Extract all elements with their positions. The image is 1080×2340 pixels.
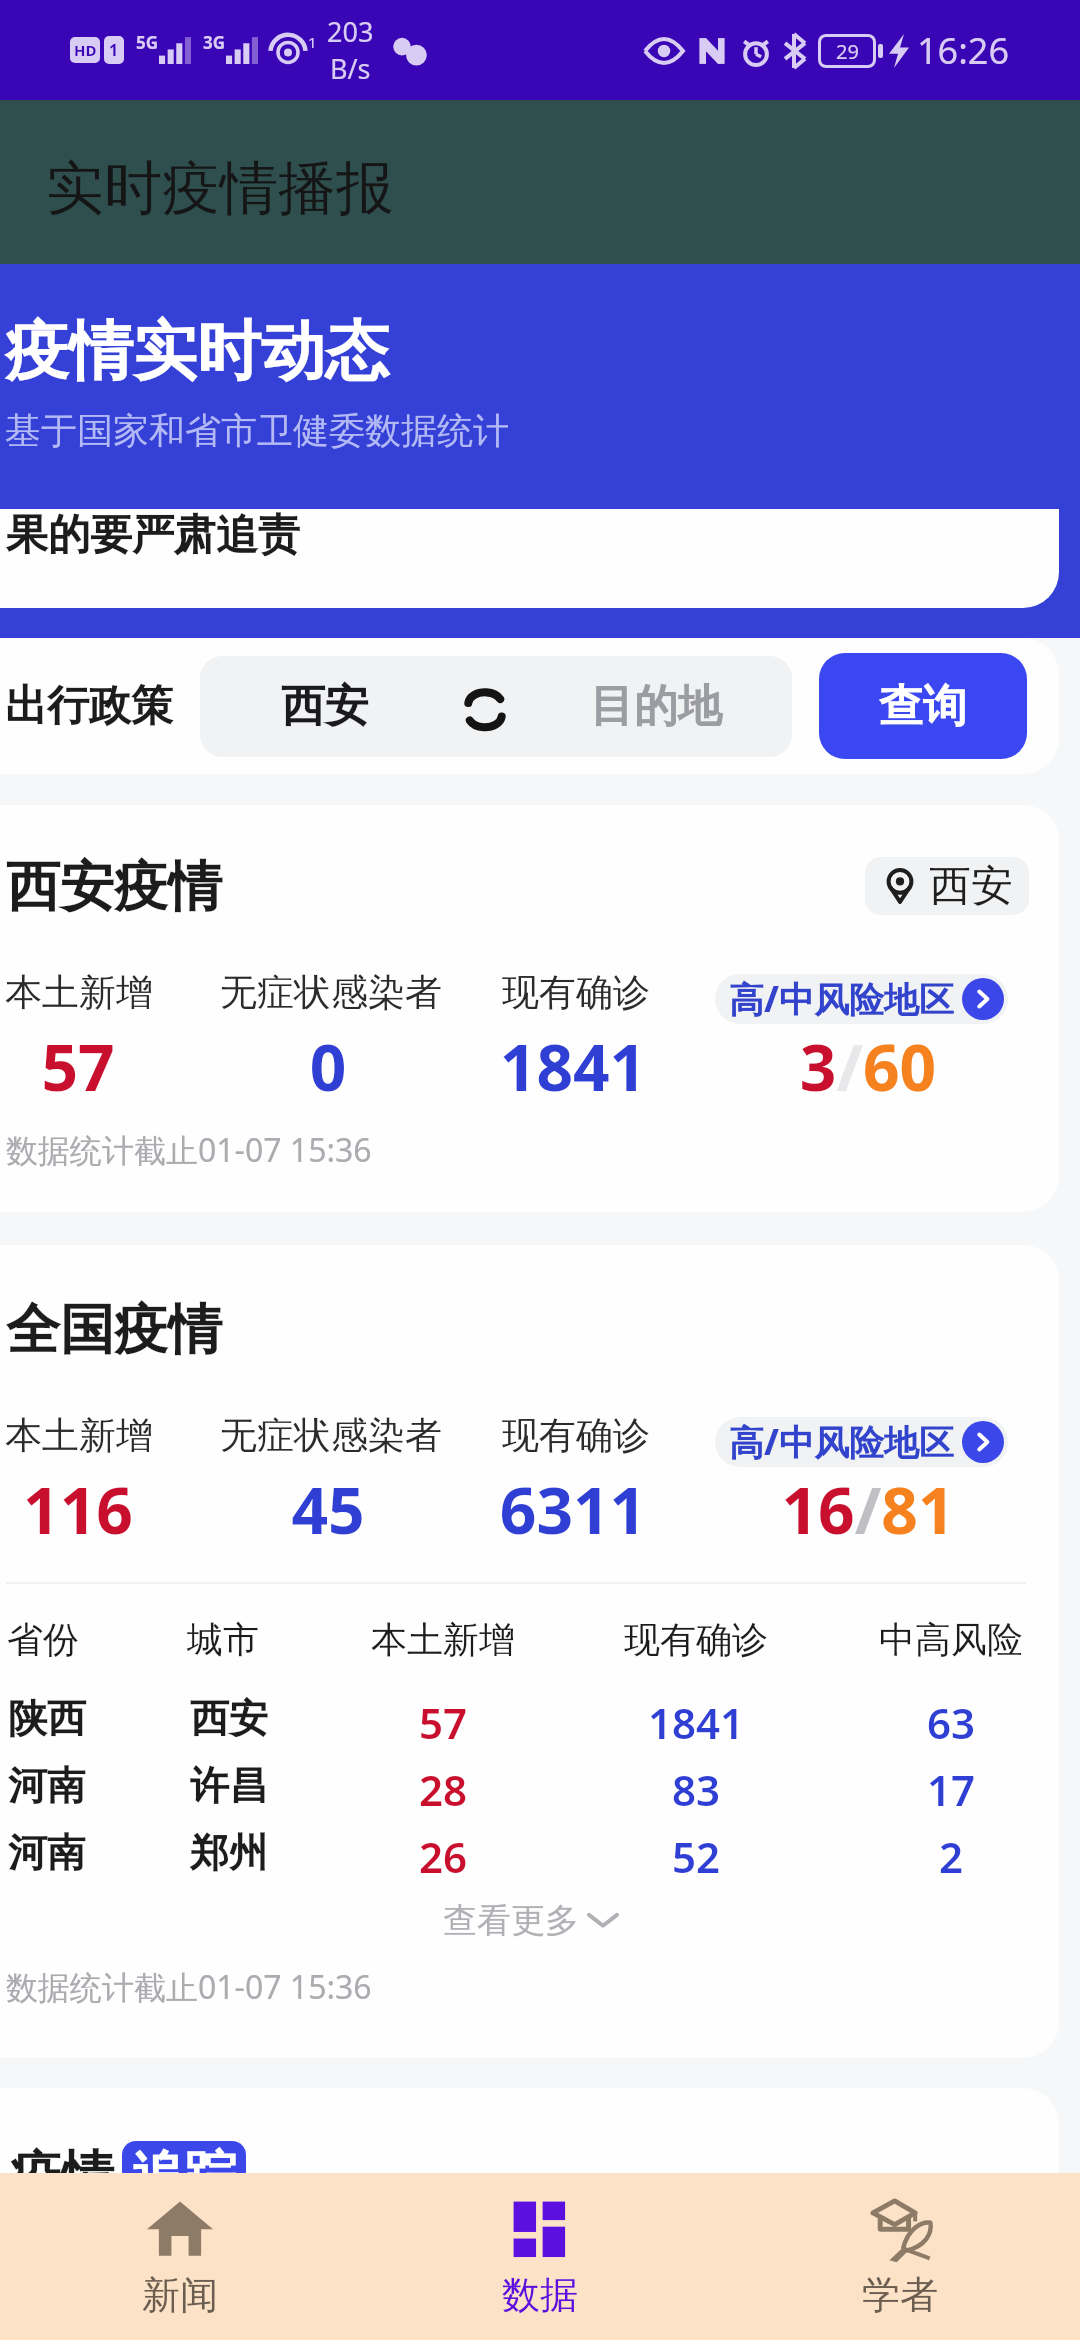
staticText: 学者 bbox=[862, 2271, 938, 2319]
staticText: 数据统计截止01-07 15:36 bbox=[6, 1965, 372, 2009]
staticText: 1841 bbox=[536, 1694, 856, 1750]
staticText: 数据统计截止01-07 15:36 bbox=[6, 1128, 372, 1172]
button[interactable]: 高/中风险地区 bbox=[715, 974, 1008, 1024]
staticText: 57 bbox=[283, 1694, 603, 1750]
staticText: 6311 bbox=[423, 1466, 723, 1553]
staticText: 17 bbox=[791, 1761, 1059, 1817]
staticText: 西安疫情 bbox=[6, 853, 222, 921]
staticText: 无症状感染者 bbox=[220, 969, 442, 1016]
staticText: 郑州 bbox=[190, 1828, 268, 1877]
staticText: 河南 bbox=[8, 1828, 86, 1877]
staticText: 追踪 bbox=[132, 2143, 236, 2209]
staticText: 本土新增 bbox=[283, 1617, 603, 1662]
button[interactable]: 新闻 bbox=[0, 2173, 360, 2340]
button[interactable]: 查询 bbox=[819, 653, 1027, 759]
button[interactable]: 数据 bbox=[360, 2173, 720, 2340]
staticText: 城市 bbox=[63, 1617, 383, 1662]
staticText: 高/中风险地区 bbox=[729, 975, 954, 1023]
staticText: 省份 bbox=[0, 1617, 203, 1662]
staticText: 基于国家和省市卫健委数据统计 bbox=[5, 408, 509, 453]
staticText: 河南 bbox=[8, 1761, 86, 1810]
staticText: 高/中风险地区 bbox=[729, 1418, 954, 1466]
staticText: 3/60 bbox=[718, 1023, 1018, 1110]
staticText: 1 bbox=[109, 39, 119, 61]
staticText: 63 bbox=[791, 1694, 1059, 1750]
staticText: 1841 bbox=[423, 1023, 723, 1110]
button[interactable]: 果的要严肃追责 bbox=[0, 509, 1059, 608]
button[interactable]: 目的地 bbox=[520, 656, 792, 757]
staticText: 数据 bbox=[502, 2271, 578, 2319]
staticText: 新闻 bbox=[142, 2271, 218, 2319]
staticText: 许昌 bbox=[190, 1761, 268, 1810]
staticText: 查看更多 bbox=[443, 1899, 579, 1942]
staticText: 3G bbox=[203, 31, 226, 54]
staticText: 疫情 bbox=[10, 2143, 114, 2209]
staticText: 29 bbox=[836, 38, 859, 65]
staticText: 1 bbox=[308, 32, 317, 52]
staticText: 目的地 bbox=[590, 679, 722, 734]
staticText: 中高风险 bbox=[791, 1617, 1059, 1662]
staticText: 无症状感染者 bbox=[220, 1412, 442, 1459]
staticText: 2 bbox=[791, 1828, 1059, 1884]
staticText: 果的要严肃追责 bbox=[6, 509, 300, 562]
staticText: 116 bbox=[0, 1466, 228, 1553]
button[interactable]: 河南 bbox=[0, 1828, 1059, 1884]
staticText: 西安 bbox=[281, 679, 369, 734]
staticText: 26 bbox=[283, 1828, 603, 1884]
staticText: 本土新增 bbox=[5, 1412, 153, 1459]
staticText: HD bbox=[74, 40, 97, 60]
staticText: 现有确诊 bbox=[502, 969, 650, 1016]
staticText: 实时疫情播报 bbox=[46, 152, 394, 225]
staticText: 5G bbox=[136, 31, 159, 54]
staticText: 现有确诊 bbox=[536, 1617, 856, 1662]
staticText: 203 bbox=[327, 13, 374, 50]
staticText: 0 bbox=[178, 1023, 478, 1110]
staticText: 52 bbox=[536, 1828, 856, 1884]
button[interactable]: 西安 bbox=[865, 857, 1029, 915]
staticText: 45 bbox=[178, 1466, 478, 1553]
staticText: 西安 bbox=[190, 1694, 268, 1743]
staticText: 现有确诊 bbox=[502, 1412, 650, 1459]
button[interactable]: 高/中风险地区 bbox=[715, 1417, 1008, 1467]
staticText: 57 bbox=[0, 1023, 228, 1110]
button[interactable]: Swap origin and destination bbox=[450, 656, 520, 757]
button[interactable]: 西安 bbox=[200, 656, 450, 757]
staticText: 28 bbox=[283, 1761, 603, 1817]
staticText: 16:26 bbox=[917, 26, 1010, 75]
staticText: 陕西 bbox=[8, 1694, 86, 1743]
button[interactable]: 河南 bbox=[0, 1761, 1059, 1817]
staticText: 16/81 bbox=[718, 1466, 1018, 1553]
staticText: 查询 bbox=[879, 679, 967, 734]
staticText: B/s bbox=[330, 50, 371, 87]
button[interactable]: 学者 bbox=[720, 2173, 1080, 2340]
staticText: 出行政策 bbox=[5, 680, 173, 733]
button[interactable]: 陕西 bbox=[0, 1694, 1059, 1750]
staticText: 全国疫情 bbox=[6, 1296, 222, 1364]
button[interactable]: 查看更多 bbox=[0, 1890, 1059, 1950]
staticText: 疫情实时动态 bbox=[5, 311, 389, 392]
staticText: 83 bbox=[536, 1761, 856, 1817]
staticText: 西安 bbox=[929, 860, 1013, 913]
staticText: 本土新增 bbox=[5, 969, 153, 1016]
